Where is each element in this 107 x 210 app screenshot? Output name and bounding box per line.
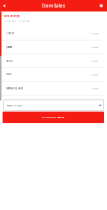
staticText: 6 Item: [91, 32, 98, 35]
staticText: 2 Item: [91, 73, 98, 76]
staticText: 5 Item: [91, 45, 98, 49]
staticText: T Shirt: [6, 31, 14, 35]
staticText: samsung A20: [6, 86, 22, 90]
staticText: Report in Days: [7, 104, 22, 107]
button[interactable]: milk: [0, 68, 107, 82]
button[interactable]: samsung A20: [0, 82, 107, 95]
button[interactable]: T Shirt: [0, 27, 107, 40]
staticText: DOWNLOAD REPORT: [42, 116, 64, 119]
staticText: Jacket: [6, 45, 12, 49]
button[interactable]: Back: [0, 0, 9, 11]
staticText: 15 Feb 2021 - 17 Mar 2021: [4, 19, 30, 22]
staticText: Shoe: [6, 59, 12, 62]
button[interactable]: Jacket: [0, 40, 107, 54]
staticText: Item Sales: [42, 3, 65, 9]
staticText: Last 30 Days: [4, 14, 19, 18]
staticText: 3 Item: [91, 59, 98, 62]
button[interactable]: Report in Days: [4, 100, 104, 111]
button[interactable]: Settings: [96, 0, 106, 11]
button[interactable]: Shoe: [0, 54, 107, 68]
staticText: 1 Item: [91, 87, 98, 90]
button[interactable]: DOWNLOAD REPORT: [3, 112, 104, 123]
staticText: milk: [6, 73, 11, 76]
